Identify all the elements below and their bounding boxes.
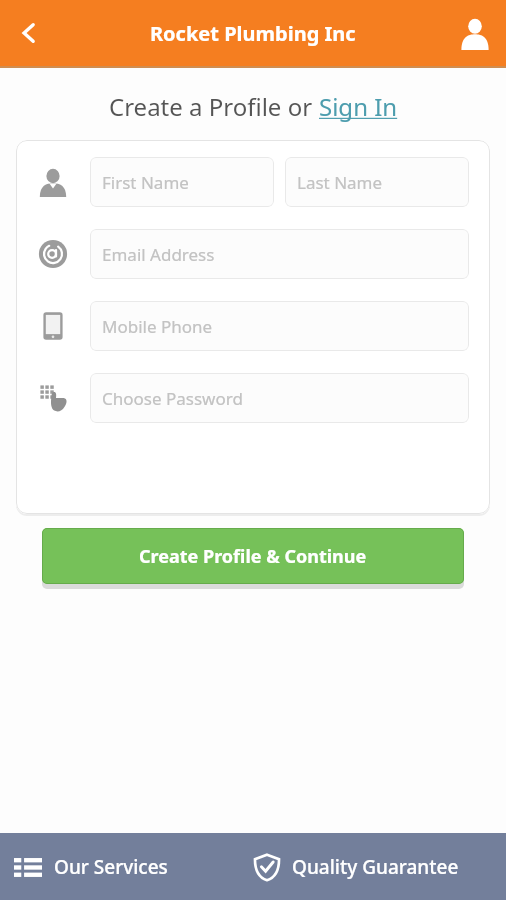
staticText: Email Address bbox=[102, 243, 215, 266]
button[interactable]: Sign In bbox=[319, 90, 398, 123]
button[interactable]: Quality Guarantee bbox=[253, 833, 506, 900]
staticText: Rocket Plumbing Inc bbox=[150, 20, 356, 47]
button[interactable]: Last Name bbox=[285, 157, 469, 207]
staticText: Sign In bbox=[319, 90, 398, 123]
button[interactable]: Choose Password bbox=[90, 373, 469, 423]
button[interactable]: Mobile Phone bbox=[90, 301, 469, 351]
staticText: Quality Guarantee bbox=[292, 854, 459, 880]
button[interactable]: Email Address bbox=[90, 229, 469, 279]
button[interactable]: Profile bbox=[444, 0, 506, 66]
staticText: Create Profile & Continue bbox=[139, 544, 367, 569]
staticText: Create a Profile or bbox=[109, 90, 319, 123]
button[interactable]: Create Profile & Continue bbox=[42, 528, 464, 584]
button[interactable]: First Name bbox=[90, 157, 274, 207]
button[interactable]: Our Services bbox=[0, 833, 253, 900]
button[interactable]: Back bbox=[0, 0, 58, 66]
staticText: Choose Password bbox=[102, 387, 243, 410]
staticText: Our Services bbox=[54, 854, 168, 880]
staticText: Last Name bbox=[297, 171, 383, 194]
staticText: First Name bbox=[102, 171, 189, 194]
staticText: Mobile Phone bbox=[102, 315, 213, 338]
